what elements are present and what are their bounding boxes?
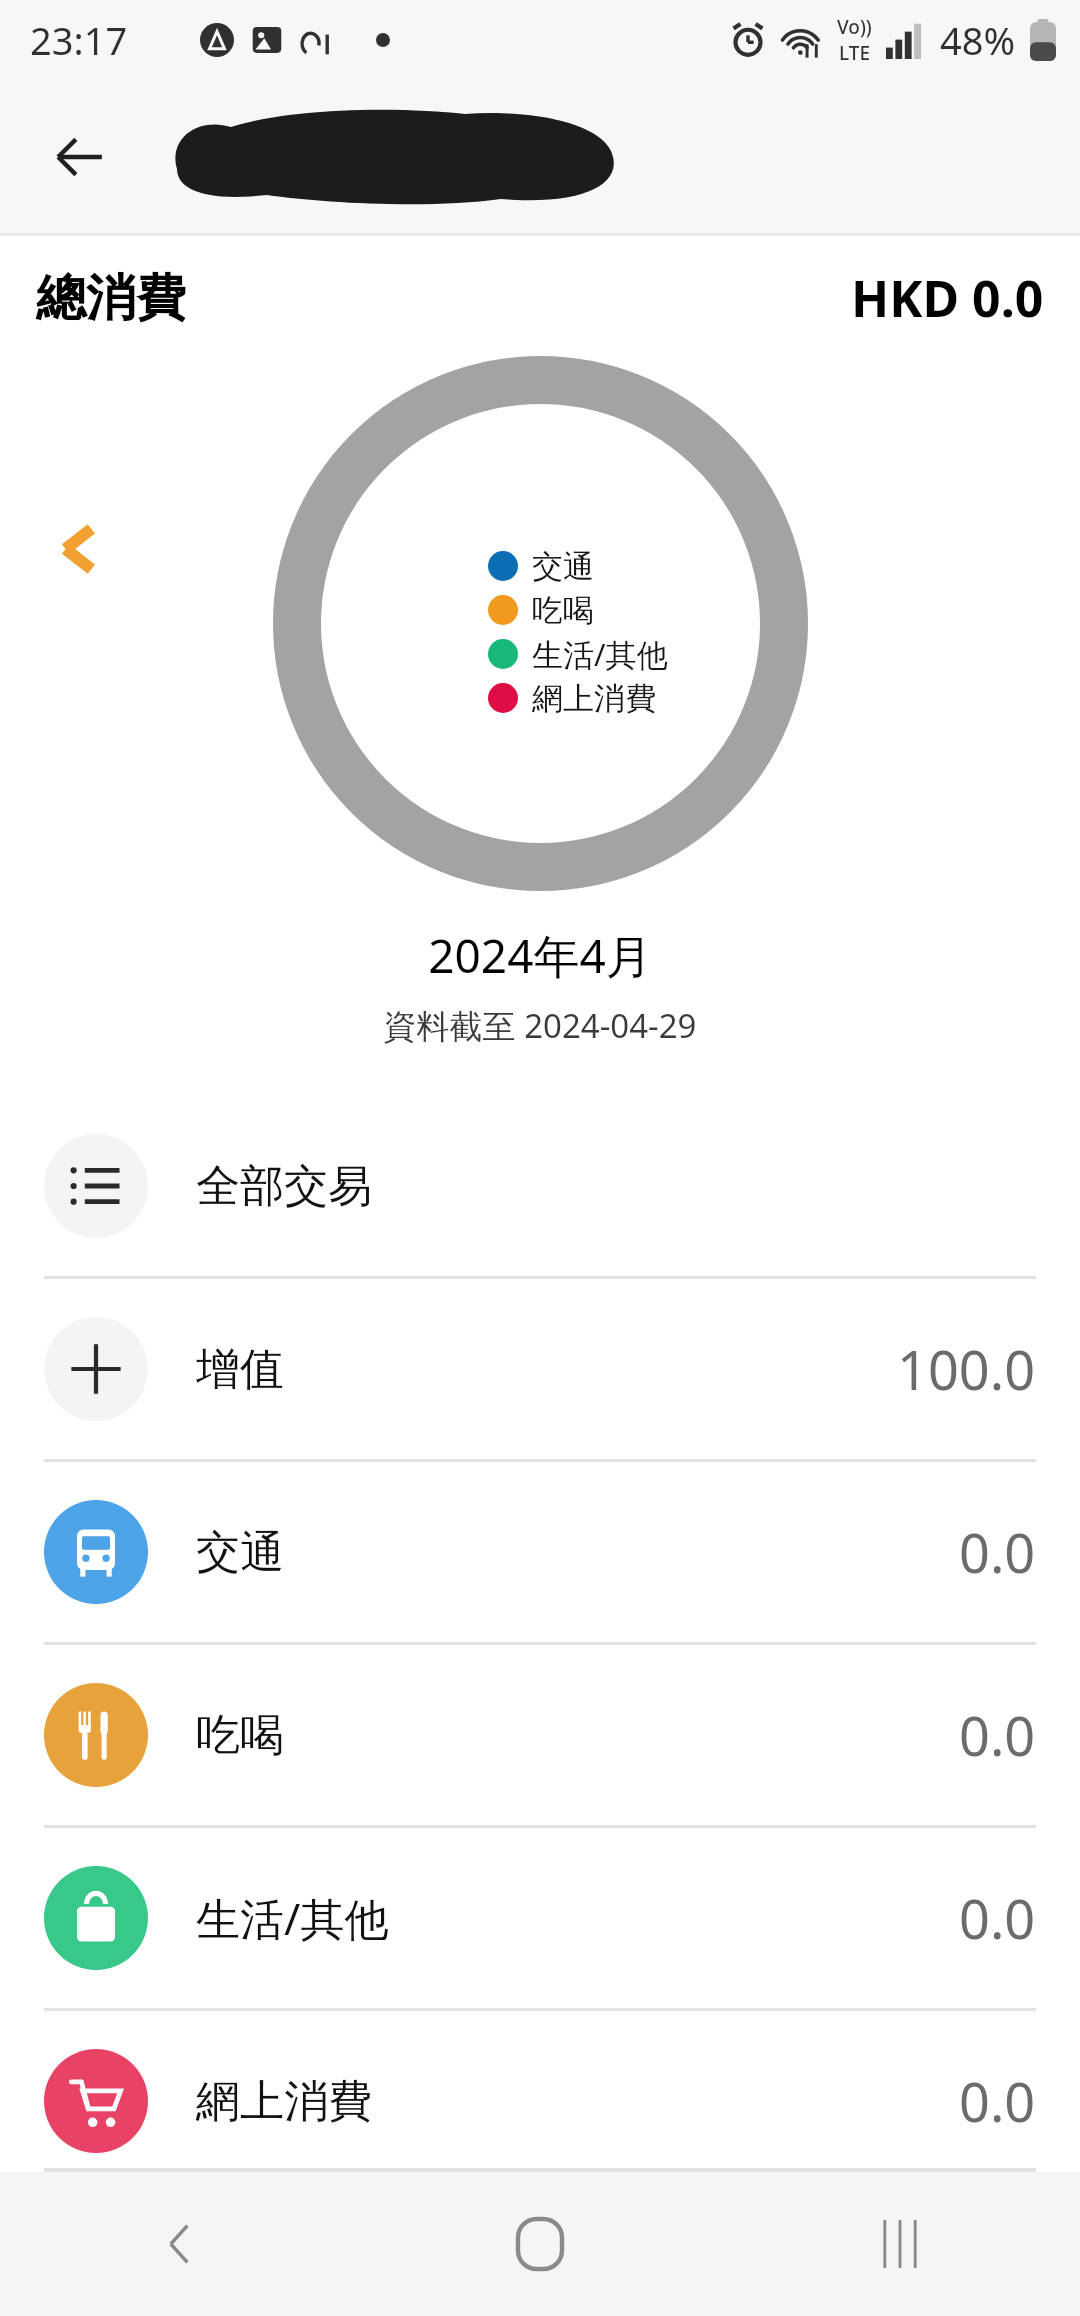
staticText: Vo)) xyxy=(837,14,872,40)
staticText: 交通 xyxy=(196,1525,284,1580)
staticText: 48% xyxy=(940,14,1016,66)
staticText: 0.0 xyxy=(959,1881,1036,1955)
button[interactable]: 增值 xyxy=(0,1279,1080,1459)
button[interactable]: Back xyxy=(34,111,126,203)
staticText: 全部交易 xyxy=(196,1159,372,1214)
staticText: 網上消費 xyxy=(532,679,656,718)
staticText: 生活/其他 xyxy=(196,1888,389,1948)
staticText: 生活/其他 xyxy=(532,633,668,675)
button[interactable]: 網上消費 xyxy=(0,2011,1080,2191)
staticText: 23:17 xyxy=(30,14,128,66)
button[interactable]: 生活/其他 xyxy=(0,1828,1080,2008)
staticText: 0.0 xyxy=(959,2064,1036,2138)
staticText: 網上消費 xyxy=(196,2074,372,2129)
staticText: 0.0 xyxy=(959,1515,1036,1589)
staticText: 100.0 xyxy=(897,1332,1036,1406)
staticText: 2024年4月 xyxy=(0,924,1080,987)
button[interactable]: 交通 xyxy=(0,1462,1080,1642)
staticText: 增值 xyxy=(196,1342,284,1397)
button[interactable]: Home xyxy=(360,2172,720,2316)
staticText: 0.0 xyxy=(959,1698,1036,1772)
staticText: 總消費 xyxy=(36,267,186,330)
button[interactable]: Recents xyxy=(720,2172,1080,2316)
staticText: 吃喝 xyxy=(532,591,594,630)
staticText: 交通 xyxy=(532,547,594,586)
button[interactable]: 全部交易 xyxy=(0,1096,1080,1276)
staticText: 吃喝 xyxy=(196,1708,284,1763)
button[interactable]: Previous month xyxy=(24,494,134,604)
staticText: HKD 0.0 xyxy=(851,264,1044,332)
staticText: 資料截至 2024-04-29 xyxy=(0,1003,1080,1048)
staticText: LTE xyxy=(839,40,871,66)
button[interactable]: 吃喝 xyxy=(0,1645,1080,1825)
button[interactable]: Back xyxy=(0,2172,360,2316)
